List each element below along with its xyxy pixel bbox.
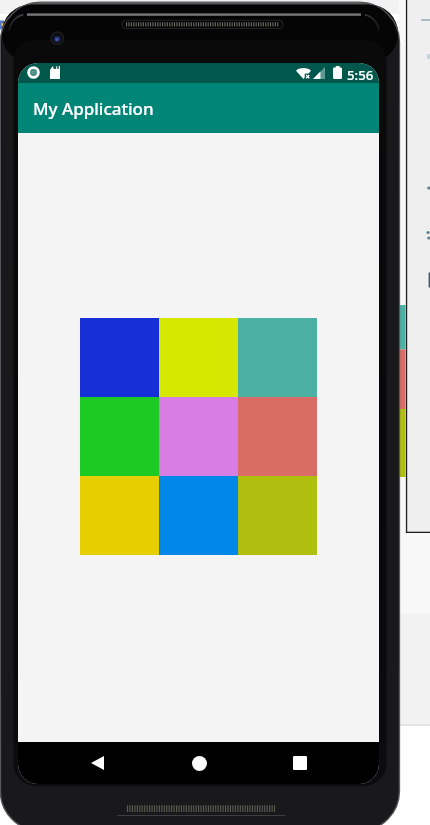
button[interactable]: Recent apps xyxy=(285,742,315,784)
staticText: 5:56 xyxy=(347,66,374,84)
button[interactable]: Back xyxy=(82,742,112,784)
staticText: My Application xyxy=(33,97,154,120)
button[interactable]: Home xyxy=(184,742,214,784)
